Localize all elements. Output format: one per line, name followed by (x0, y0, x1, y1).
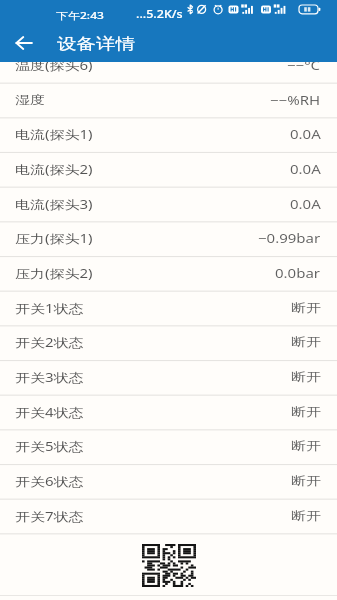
staticText: 开关4状态 (15, 404, 84, 420)
staticText: 断开 (291, 509, 321, 524)
button[interactable]: 开关4状态 (0, 396, 337, 430)
staticText: −0.99bar (258, 230, 321, 246)
staticText: 断开 (291, 439, 321, 454)
staticText: 温度(探头6) (15, 57, 93, 73)
staticText: 湿度 (15, 93, 45, 108)
button[interactable]: 电流(探头1) (0, 118, 337, 152)
button[interactable]: 开关5状态 (0, 430, 337, 464)
staticText: −−%RH (270, 92, 321, 108)
staticText: 开关2状态 (15, 334, 84, 350)
staticText: 开关1状态 (15, 300, 84, 316)
staticText: 设备详情 (57, 33, 135, 53)
button[interactable]: 开关1状态 (0, 292, 337, 326)
staticText: −−°C (287, 57, 321, 73)
button[interactable]: 压力(探头1) (0, 222, 337, 256)
button[interactable]: 电流(探头2) (0, 153, 337, 187)
staticText: 断开 (291, 335, 321, 350)
staticText: 断开 (291, 301, 321, 316)
staticText: 下午2:43 (56, 9, 104, 21)
staticText: 电流(探头3) (15, 196, 93, 212)
button[interactable]: 压力(探头2) (0, 257, 337, 291)
button[interactable]: 湿度 (0, 84, 337, 118)
staticText: 断开 (291, 370, 321, 385)
button[interactable]: 电流(探头3) (0, 188, 337, 222)
staticText: 电流(探头2) (15, 161, 93, 177)
staticText: 开关3状态 (15, 369, 84, 385)
button[interactable]: 开关7状态 (0, 500, 337, 534)
button[interactable]: 开关3状态 (0, 361, 337, 395)
button[interactable]: 温度(探头6) (0, 48, 337, 83)
button[interactable]: 开关2状态 (0, 326, 337, 360)
button[interactable]: Back (0, 22, 47, 62)
staticText: 0.0A (290, 161, 321, 177)
staticText: 0.0bar (275, 265, 321, 281)
staticText: 断开 (291, 474, 321, 489)
staticText: 0.0A (290, 126, 321, 142)
staticText: 0.0A (290, 196, 321, 212)
staticText: 开关6状态 (15, 473, 84, 489)
staticText: ...5.2K/s (136, 8, 183, 21)
staticText: 压力(探头2) (15, 265, 93, 281)
staticText: 压力(探头1) (15, 230, 93, 246)
staticText: 断开 (291, 405, 321, 420)
button[interactable]: 开关6状态 (0, 465, 337, 499)
staticText: 开关5状态 (15, 438, 84, 454)
staticText: 开关7状态 (15, 508, 84, 524)
staticText: 电流(探头1) (15, 126, 93, 142)
